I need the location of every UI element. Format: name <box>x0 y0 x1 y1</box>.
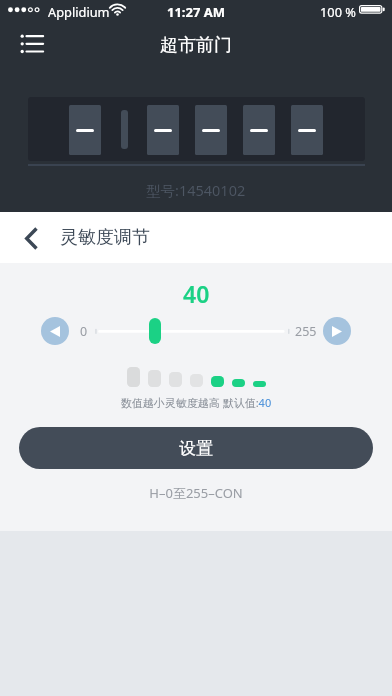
staticText: 设置 <box>179 438 213 459</box>
staticText: 255 <box>295 323 317 340</box>
button[interactable]: 设置 <box>19 427 373 469</box>
staticText: 灵敏度调节 <box>60 226 150 249</box>
staticText: Applidium <box>48 3 110 20</box>
button[interactable]: Switch <box>195 105 227 155</box>
button[interactable]: Back <box>14 221 48 255</box>
staticText: 超市前门 <box>160 34 232 57</box>
staticText: 40 <box>183 278 210 309</box>
staticText: 0 <box>80 323 88 340</box>
button[interactable]: Switch <box>147 105 179 155</box>
button[interactable]: Switch <box>243 105 275 155</box>
staticText: 11:27 AM <box>167 3 226 20</box>
staticText: H–0至255–CON <box>0 484 392 502</box>
button[interactable]: Switch <box>291 105 323 155</box>
staticText: 数值越小灵敏度越高 默认值:40 <box>0 395 392 410</box>
button[interactable]: Decrease <box>41 317 69 345</box>
button[interactable]: Switch <box>69 105 101 155</box>
button[interactable]: Menu <box>8 24 56 64</box>
staticText: 型号:14540102 <box>146 180 246 200</box>
staticText: 100 % <box>320 3 356 20</box>
button[interactable]: Increase <box>323 317 351 345</box>
